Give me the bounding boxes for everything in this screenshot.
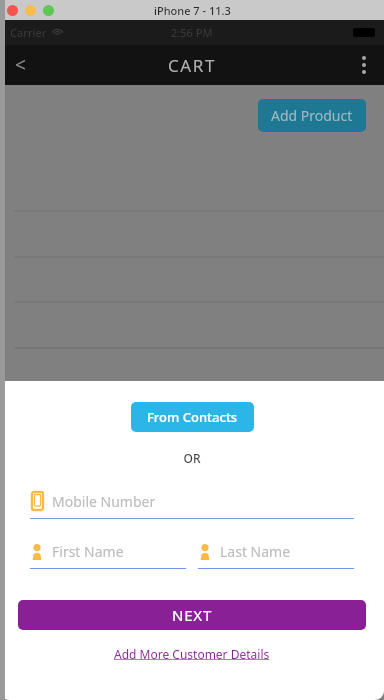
staticText: iPhone 7 - 11.3 — [154, 3, 231, 18]
button[interactable]: Last Name — [198, 538, 354, 569]
staticText: From Contacts — [147, 408, 238, 426]
button[interactable]: Add Product — [258, 99, 366, 132]
button[interactable]: Back — [0, 45, 40, 85]
staticText: < — [15, 52, 26, 78]
staticText: First Name — [52, 542, 124, 561]
button[interactable]: More options — [344, 45, 384, 85]
staticText: Add More Customer Details — [114, 646, 270, 662]
staticText: OR — [0, 450, 384, 466]
button[interactable]: Add More Customer Details — [108, 643, 276, 665]
staticText: Carrier — [10, 25, 47, 40]
staticText: Add Product — [271, 106, 353, 125]
button[interactable]: From Contacts — [131, 402, 254, 432]
staticText: Last Name — [220, 542, 291, 561]
button[interactable]: Mobile Number — [30, 488, 354, 519]
staticText: 2:56 PM — [171, 25, 213, 40]
button[interactable]: First Name — [30, 538, 186, 569]
staticText: CART — [168, 54, 217, 77]
button[interactable]: NEXT — [18, 600, 366, 630]
staticText: NEXT — [172, 605, 213, 625]
staticText: Mobile Number — [52, 492, 156, 511]
